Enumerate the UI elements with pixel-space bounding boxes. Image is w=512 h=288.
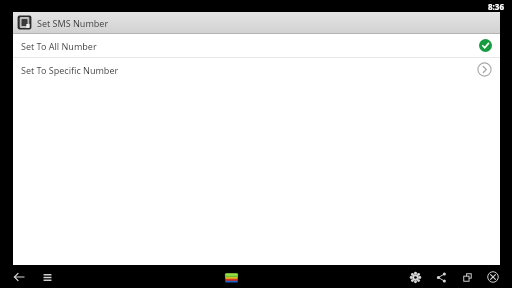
- button[interactable]: Settings: [406, 268, 424, 286]
- button[interactable]: Close: [484, 268, 502, 286]
- staticText: Set To Specific Number: [21, 64, 477, 76]
- button[interactable]: Set To All Number: [13, 34, 500, 57]
- button[interactable]: Restore window: [458, 268, 476, 286]
- other: Open: [477, 62, 492, 77]
- button[interactable]: Home: [222, 268, 240, 286]
- staticText: Set To All Number: [21, 40, 479, 52]
- button[interactable]: Share: [432, 268, 450, 286]
- staticText: 8:36: [488, 1, 504, 12]
- button[interactable]: Back: [10, 268, 28, 286]
- staticText: Set SMS Number: [37, 17, 109, 29]
- button[interactable]: Set To Specific Number: [13, 58, 500, 81]
- button[interactable]: Menu: [38, 268, 56, 286]
- other: Selected: [479, 39, 492, 52]
